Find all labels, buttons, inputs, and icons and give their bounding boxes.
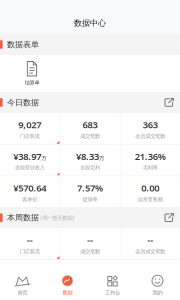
button[interactable]: 结算单 xyxy=(12,59,52,87)
button[interactable]: 导出 xyxy=(158,209,180,227)
staticText: 万 xyxy=(99,155,104,161)
staticText: 提袋率 xyxy=(82,196,97,203)
staticText: 21.36% xyxy=(135,150,166,162)
staticText: 毛利率 xyxy=(143,164,158,171)
button[interactable]: 数据 xyxy=(45,260,90,300)
button[interactable]: 工作台 xyxy=(90,260,135,300)
staticText: 363 xyxy=(143,118,158,131)
staticText: 9,027 xyxy=(18,118,41,131)
staticText: 工作台 xyxy=(105,289,120,296)
staticText: ¥570.64 xyxy=(13,182,46,194)
staticText: 客单价 xyxy=(22,196,37,203)
staticText: -- xyxy=(27,234,33,246)
staticText: -- xyxy=(87,234,93,246)
staticText: 会员成交笔数 xyxy=(135,248,165,255)
staticText: 结算单 xyxy=(24,79,39,86)
staticText: 首页 xyxy=(17,289,27,296)
button[interactable]: 导出 xyxy=(158,93,180,111)
staticText: 0.00 xyxy=(141,182,159,194)
staticText: 含税毛利 xyxy=(80,164,100,171)
button[interactable]: 首页 xyxy=(0,260,45,300)
staticText: 含税营业收入 xyxy=(15,164,45,171)
staticText: 门店客流 xyxy=(20,248,40,255)
staticText: 成交笔数 xyxy=(80,133,100,139)
staticText: 今日数据 xyxy=(7,98,39,107)
staticText: 成交笔数 xyxy=(80,248,100,255)
staticText: 自营零售额 xyxy=(138,196,163,203)
staticText: 本周数据 xyxy=(7,213,39,223)
staticText: 我的 xyxy=(152,289,162,296)
staticText: 万 xyxy=(41,155,46,161)
staticText: 门店客流 xyxy=(20,133,40,139)
staticText: ¥8.33 xyxy=(76,150,99,162)
staticText: 683 xyxy=(82,118,97,131)
button[interactable]: 我的 xyxy=(135,260,180,300)
staticText: 数据 xyxy=(62,289,72,296)
staticText: 7.57% xyxy=(77,182,103,194)
staticText: 数据中心 xyxy=(74,18,106,28)
staticText: -- xyxy=(147,234,153,246)
staticText: 会员成交笔数 xyxy=(135,133,165,139)
staticText: ¥38.97 xyxy=(13,150,41,162)
staticText: (周一暂无数据) xyxy=(41,214,75,221)
staticText: 数据表单 xyxy=(7,40,39,49)
